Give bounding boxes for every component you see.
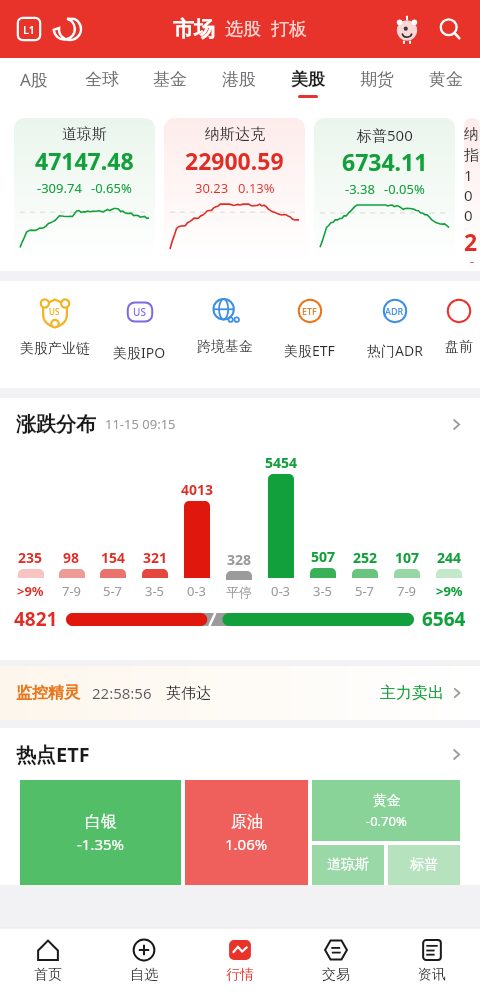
staticText: 港股	[222, 69, 256, 90]
button[interactable]: 期货	[342, 58, 411, 108]
staticText: 3-5	[313, 582, 333, 600]
staticText: 235	[18, 548, 43, 567]
staticText: 热点ETF	[16, 741, 90, 768]
button[interactable]: 盘前	[437, 295, 480, 356]
staticText: -3.38	[345, 180, 375, 198]
staticText: -309.74	[37, 179, 82, 197]
staticText: 6734.11	[342, 146, 428, 177]
staticText: 跨境基金	[197, 338, 253, 356]
button[interactable]: ADR	[352, 295, 437, 360]
staticText: 标普500	[357, 125, 413, 145]
staticText: 4821	[14, 606, 58, 632]
staticText: 107	[395, 548, 420, 567]
staticText: 热门ADR	[367, 341, 423, 360]
button[interactable]: 首页	[0, 928, 96, 992]
staticText: 平停	[226, 584, 252, 600]
staticText: 5454	[265, 453, 298, 472]
staticText: 6564	[422, 606, 466, 632]
staticText: 纳斯达克	[205, 125, 265, 144]
staticText: 1.06%	[225, 834, 268, 854]
button[interactable]: Alerts	[392, 14, 422, 44]
button[interactable]: 纳斯达克	[164, 118, 305, 263]
staticText: 244	[437, 548, 462, 567]
button[interactable]: 热点ETF	[16, 728, 464, 780]
button[interactable]: Night mode	[55, 14, 85, 44]
button[interactable]: 美股	[273, 58, 342, 108]
button[interactable]: 道琼斯	[312, 845, 384, 885]
staticText: >9%	[436, 582, 463, 600]
staticText: 行情	[226, 966, 254, 984]
button[interactable]: 选股	[225, 18, 261, 41]
staticText: 英伟达	[166, 684, 211, 703]
staticText: 25	[464, 226, 480, 263]
button[interactable]: 白银	[20, 780, 181, 885]
button[interactable]: 自选	[96, 928, 192, 992]
staticText: A股	[20, 68, 48, 91]
staticText: 黄金	[373, 792, 401, 810]
button[interactable]: 黄金	[312, 780, 460, 841]
staticText: >9%	[17, 582, 44, 600]
staticText: 328	[227, 550, 252, 569]
button[interactable]: 跨境基金	[182, 295, 267, 356]
staticText: 纳指100	[464, 125, 480, 225]
staticText: 3-5	[145, 582, 165, 600]
button[interactable]: 涨跌分布	[16, 398, 464, 450]
staticText: 11-15 09:15	[105, 415, 176, 433]
button[interactable]: 道琼斯	[14, 118, 155, 263]
button[interactable]: US	[97, 295, 182, 362]
staticText: -0.05%	[384, 180, 425, 198]
button[interactable]: 基金	[136, 58, 204, 108]
button[interactable]: 打板	[271, 18, 307, 41]
staticText: 道琼斯	[327, 856, 369, 874]
staticText: 道琼斯	[62, 125, 107, 144]
staticText: 美股	[291, 69, 325, 90]
staticText: 黄金	[429, 69, 463, 90]
staticText: -1.35%	[77, 834, 125, 854]
button[interactable]: L1 quote level	[16, 16, 42, 42]
staticText: 交易	[322, 966, 350, 984]
staticText: 期货	[360, 69, 394, 90]
staticText: 5-7	[355, 582, 375, 600]
button[interactable]: 标普	[388, 845, 460, 885]
staticText: 白银	[85, 812, 117, 832]
staticText: 涨跌分布	[16, 412, 96, 437]
button[interactable]: 港股	[204, 58, 273, 108]
staticText: 盘前	[445, 338, 473, 356]
staticText: 原油	[231, 812, 263, 832]
staticText: 监控精灵	[16, 683, 80, 703]
button[interactable]: 交易	[288, 928, 384, 992]
staticText: 4013	[181, 480, 214, 499]
staticText: 全球	[85, 69, 119, 90]
staticText: 154	[101, 548, 126, 567]
button[interactable]: US	[12, 295, 97, 358]
staticText: L1	[23, 22, 36, 37]
staticText: 美股ETF	[284, 341, 335, 360]
staticText: 首页	[34, 966, 62, 984]
button[interactable]: 市场	[173, 16, 215, 42]
button[interactable]: 全球	[68, 58, 136, 108]
staticText: 标普	[410, 856, 438, 874]
staticText: 252	[353, 548, 378, 567]
button[interactable]: 资讯	[384, 928, 480, 992]
staticText: US	[133, 305, 146, 319]
staticText: 0-3	[271, 582, 291, 600]
staticText: 0-3	[187, 582, 207, 600]
staticText: 98	[63, 548, 80, 567]
button[interactable]: 行情	[192, 928, 288, 992]
button[interactable]: A股	[0, 58, 68, 108]
staticText: 507	[311, 547, 336, 566]
button[interactable]: 标普500	[314, 118, 455, 263]
button[interactable]: 原油	[185, 780, 308, 885]
button[interactable]: 监控精灵	[0, 666, 480, 720]
button[interactable]: 纳指100	[464, 118, 480, 263]
staticText: 47147.48	[35, 145, 134, 176]
button[interactable]: Search	[434, 13, 466, 45]
staticText: 主力卖出	[380, 683, 444, 703]
staticText: 22900.59	[185, 145, 284, 176]
staticText: 30.23	[195, 179, 229, 197]
button[interactable]: 黄金	[411, 58, 480, 108]
staticText: 基金	[153, 69, 187, 90]
staticText: 7-9	[62, 582, 82, 600]
staticText: 0.13%	[238, 179, 275, 197]
button[interactable]: ETF	[267, 295, 352, 360]
